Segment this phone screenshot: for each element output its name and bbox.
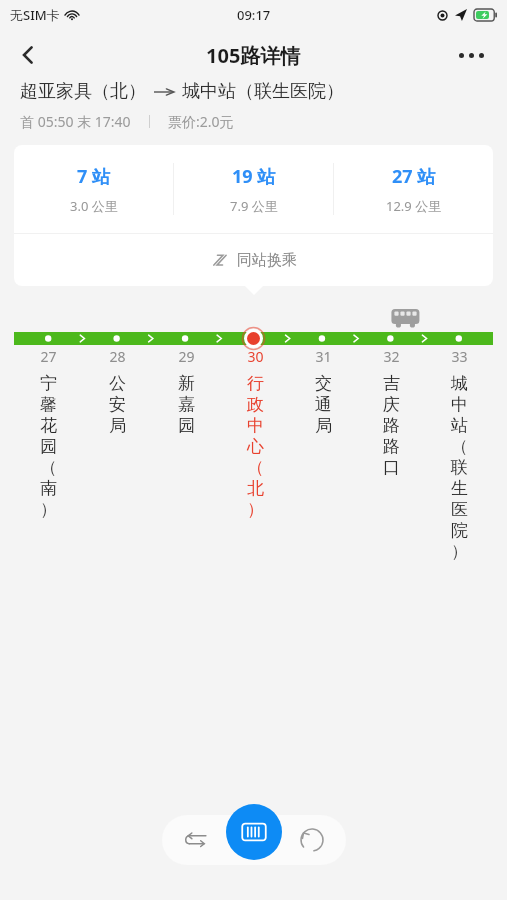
- staticText: 南: [40, 478, 57, 499]
- staticText: 口: [383, 457, 400, 478]
- staticText: 30: [247, 347, 264, 366]
- staticText: 城: [451, 373, 468, 394]
- staticText: 北: [247, 478, 264, 499]
- staticText: 联: [451, 457, 468, 478]
- staticText: 3.0 公里: [70, 197, 118, 215]
- button[interactable]: Back: [6, 33, 50, 77]
- staticText: ）: [40, 499, 57, 520]
- staticText: 超亚家具（北）: [20, 80, 146, 103]
- staticText: 中: [451, 394, 468, 415]
- staticText: 庆: [383, 394, 400, 415]
- staticText: 馨: [40, 394, 57, 415]
- staticText: 站: [451, 415, 468, 436]
- staticText: 局: [109, 415, 126, 436]
- staticText: 安: [109, 394, 126, 415]
- staticText: （: [40, 457, 57, 478]
- button[interactable]: 31: [289, 347, 357, 436]
- staticText: 政: [247, 394, 264, 415]
- staticText: 32: [383, 347, 400, 366]
- staticText: 嘉: [178, 394, 195, 415]
- staticText: 公: [109, 373, 126, 394]
- staticText: 27: [40, 347, 57, 366]
- staticText: 12.9 公里: [386, 197, 442, 215]
- staticText: 7.9 公里: [230, 197, 278, 215]
- staticText: 27 站: [392, 164, 436, 189]
- staticText: 105路详情: [206, 42, 301, 69]
- staticText: 行: [247, 373, 264, 394]
- staticText: 局: [315, 415, 332, 436]
- staticText: 生: [451, 478, 468, 499]
- staticText: 心: [247, 436, 264, 457]
- staticText: 33: [451, 347, 468, 366]
- button[interactable]: 30: [221, 347, 289, 520]
- button[interactable]: 同站换乘: [14, 234, 493, 286]
- staticText: 无SIM卡: [10, 6, 60, 24]
- button[interactable]: 29: [152, 347, 221, 436]
- staticText: 票价:2.0元: [168, 112, 234, 131]
- staticText: 29: [178, 347, 195, 366]
- staticText: 路: [383, 415, 400, 436]
- staticText: 医: [451, 499, 468, 520]
- button[interactable]: 33: [425, 347, 493, 562]
- staticText: （: [451, 436, 468, 457]
- staticText: 09:17: [237, 6, 271, 24]
- button[interactable]: 7 站: [14, 145, 173, 233]
- staticText: ）: [247, 499, 264, 520]
- staticText: 交: [315, 373, 332, 394]
- button[interactable]: Bus card / ticket: [226, 804, 282, 860]
- staticText: 园: [40, 436, 57, 457]
- staticText: ）: [451, 541, 468, 562]
- button[interactable]: 28: [83, 347, 152, 436]
- staticText: 同站换乘: [237, 251, 297, 270]
- staticText: 19 站: [232, 164, 276, 189]
- staticText: 28: [109, 347, 126, 366]
- staticText: 首 05:50 末 17:40: [20, 112, 131, 131]
- staticText: 31: [315, 347, 332, 366]
- staticText: 园: [178, 415, 195, 436]
- button[interactable]: Refresh: [290, 818, 334, 862]
- staticText: 院: [451, 520, 468, 541]
- staticText: 通: [315, 394, 332, 415]
- staticText: 路: [383, 436, 400, 457]
- staticText: 宁: [40, 373, 57, 394]
- staticText: 城中站（联生医院）: [182, 80, 344, 103]
- button[interactable]: More options: [449, 33, 493, 77]
- staticText: 中: [247, 415, 264, 436]
- staticText: 新: [178, 373, 195, 394]
- button[interactable]: 32: [357, 347, 425, 478]
- staticText: 7 站: [77, 164, 110, 189]
- button[interactable]: 27 站: [334, 145, 493, 233]
- staticText: 吉: [383, 373, 400, 394]
- staticText: 花: [40, 415, 57, 436]
- button[interactable]: Switch direction: [174, 818, 218, 862]
- staticText: （: [247, 457, 264, 478]
- button[interactable]: 19 站: [174, 145, 333, 233]
- button[interactable]: 27: [14, 347, 83, 520]
